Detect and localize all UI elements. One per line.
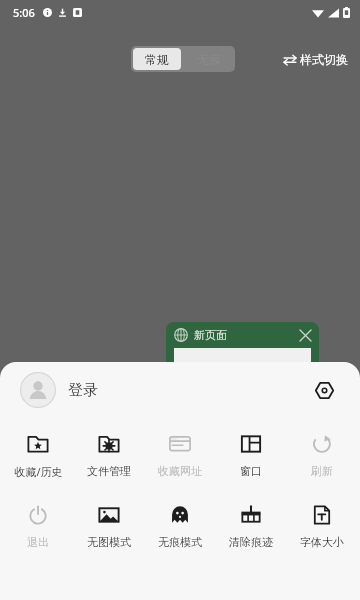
button[interactable]: 样式切换: [283, 52, 348, 67]
staticText: 样式切换: [300, 52, 348, 67]
button[interactable]: Settings: [308, 374, 340, 406]
button[interactable]: 收藏网址: [147, 428, 213, 482]
button[interactable]: 无痕模式: [147, 499, 213, 553]
staticText: 收藏网址: [158, 464, 202, 478]
button[interactable]: 收藏/历史: [5, 428, 71, 483]
staticText: 清除痕迹: [229, 535, 273, 549]
staticText: 5:06: [13, 5, 35, 20]
staticText: 新页面: [194, 328, 227, 342]
staticText: 收藏/历史: [14, 464, 63, 479]
staticText: 文件管理: [87, 464, 131, 478]
button[interactable]: 登录: [20, 372, 98, 408]
staticText: 登录: [68, 381, 98, 400]
button[interactable]: 退出: [5, 499, 71, 553]
button[interactable]: 字体大小: [289, 499, 355, 553]
staticText: 退出: [27, 535, 49, 549]
staticText: 字体大小: [300, 535, 344, 549]
staticText: 常规: [145, 52, 169, 67]
button[interactable]: 刷新: [289, 428, 355, 482]
button[interactable]: 无图模式: [76, 499, 142, 553]
staticText: 刷新: [311, 464, 333, 478]
button[interactable]: 新页面: [166, 322, 319, 382]
button[interactable]: 窗口: [218, 428, 284, 482]
button[interactable]: 常规: [133, 48, 181, 70]
button[interactable]: 清除痕迹: [218, 499, 284, 553]
staticText: 无图模式: [87, 535, 131, 549]
staticText: 窗口: [240, 464, 262, 478]
staticText: 无痕模式: [158, 535, 202, 549]
button[interactable]: 文件管理: [76, 428, 142, 482]
